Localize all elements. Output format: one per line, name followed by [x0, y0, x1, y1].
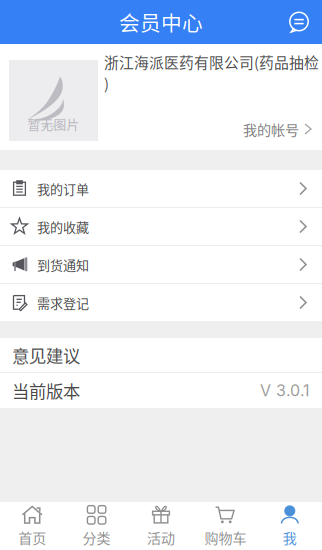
button[interactable]: 到货通知	[0, 246, 322, 283]
button[interactable]: 意见建议	[0, 338, 322, 372]
button[interactable]: 活动	[129, 503, 193, 549]
button[interactable]: 需求登记	[0, 284, 322, 321]
staticText: 当前版本	[12, 378, 80, 403]
staticText: 意见建议	[12, 342, 80, 368]
staticText: 我的帐号	[243, 119, 299, 139]
staticText: 我的收藏	[37, 217, 89, 236]
staticText: 活动	[147, 527, 175, 548]
button[interactable]: 我的收藏	[0, 208, 322, 245]
staticText: 首页	[18, 527, 46, 548]
staticText: 会员中心	[119, 7, 203, 37]
button[interactable]: 我的订单	[0, 170, 322, 207]
staticText: 需求登记	[37, 293, 89, 312]
button[interactable]: 我的帐号	[233, 116, 322, 142]
staticText: 到货通知	[37, 255, 89, 274]
button[interactable]: 消息	[288, 11, 322, 33]
button[interactable]: 我	[258, 503, 322, 549]
staticText: 我的订单	[37, 179, 89, 198]
staticText: 购物车	[204, 527, 246, 548]
button[interactable]: 购物车	[193, 503, 258, 549]
staticText: V 3.0.1	[260, 381, 310, 400]
staticText: 暂无图片	[27, 114, 79, 133]
staticText: 我	[283, 527, 297, 548]
button[interactable]: 分类	[64, 503, 129, 549]
staticText: 浙江海派医药有限公司(药品抽检 )	[104, 51, 319, 94]
staticText: 分类	[83, 527, 111, 548]
button[interactable]: 首页	[0, 503, 64, 549]
